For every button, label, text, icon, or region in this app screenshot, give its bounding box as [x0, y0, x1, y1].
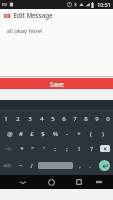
- staticText: @: [7, 130, 13, 138]
- button[interactable]: -: [61, 126, 73, 141]
- button[interactable]: .: [85, 156, 95, 175]
- button[interactable]: Enter: [95, 156, 113, 175]
- button[interactable]: ABC: [0, 156, 15, 175]
- button[interactable]: !: [73, 141, 85, 156]
- button[interactable]: @: [4, 126, 15, 141]
- button[interactable]: Switch keyboard: [93, 175, 105, 189]
- button[interactable]: :: [49, 141, 61, 156]
- button[interactable]: 6: [58, 111, 69, 126]
- staticText: .: [89, 162, 91, 170]
- staticText: 3: [28, 115, 32, 123]
- staticText: ): [102, 130, 104, 138]
- button[interactable]: %: [49, 126, 61, 141]
- staticText: (: [90, 130, 92, 138]
- staticText: #: [19, 130, 23, 138]
- staticText: !: [78, 145, 80, 153]
- staticText: -: [66, 130, 68, 138]
- button[interactable]: 7: [69, 111, 80, 126]
- staticText: 5: [51, 115, 55, 123]
- staticText: ;: [66, 145, 68, 153]
- staticText: 1: [4, 115, 8, 123]
- staticText: all okay here!: [6, 27, 43, 35]
- button[interactable]: *: [16, 141, 27, 156]
- staticText: Edit Message: [13, 11, 53, 19]
- staticText: Save: [50, 80, 64, 88]
- button[interactable]: Home: [37, 175, 65, 189]
- staticText: $: [41, 130, 45, 138]
- button[interactable]: Backspace: [97, 141, 113, 156]
- staticText: ,: [79, 162, 81, 170]
- staticText: 6: [62, 115, 66, 123]
- button[interactable]: ': [38, 141, 49, 156]
- button[interactable]: ;: [61, 141, 73, 156]
- button[interactable]: 0: [102, 111, 113, 126]
- button[interactable]: ": [27, 141, 38, 156]
- button[interactable]: Space: [38, 162, 73, 169]
- button[interactable]: ,: [75, 156, 85, 175]
- staticText: 4: [40, 115, 44, 123]
- staticText: 7: [73, 115, 77, 123]
- button[interactable]: Hide keyboard: [8, 175, 37, 189]
- button[interactable]: /: [26, 156, 36, 175]
- staticText: 2: [16, 115, 20, 123]
- button[interactable]: all okay here!: [0, 21, 113, 76]
- staticText: ': [43, 145, 45, 153]
- button[interactable]: ?: [85, 141, 97, 156]
- button[interactable]: $: [37, 126, 49, 141]
- staticText: 9: [95, 115, 99, 123]
- staticText: /: [30, 162, 33, 170]
- button[interactable]: 3: [24, 111, 36, 126]
- button[interactable]: #: [15, 126, 26, 141]
- staticText: +: [77, 130, 81, 138]
- staticText: 10:51: [97, 1, 111, 8]
- staticText: £: [30, 130, 34, 138]
- staticText: ?: [90, 145, 93, 153]
- button[interactable]: 4: [36, 111, 47, 126]
- staticText: 0: [106, 115, 110, 123]
- staticText: *: [20, 145, 24, 153]
- staticText: %: [53, 130, 58, 138]
- staticText: ABC: [3, 163, 12, 169]
- button[interactable]: 2: [12, 111, 24, 126]
- button[interactable]: 9: [91, 111, 102, 126]
- button[interactable]: =\<: [0, 141, 16, 156]
- staticText: =\<: [5, 146, 12, 152]
- button[interactable]: (: [85, 126, 97, 141]
- button[interactable]: App icon: [3, 12, 10, 19]
- staticText: :: [54, 145, 56, 153]
- button[interactable]: Recents: [65, 175, 93, 189]
- button[interactable]: £: [26, 126, 37, 141]
- button[interactable]: 1: [0, 111, 12, 126]
- button[interactable]: 5: [47, 111, 58, 126]
- button[interactable]: Settings: [15, 156, 26, 175]
- button[interactable]: +: [73, 126, 85, 141]
- staticText: ": [31, 145, 34, 153]
- button[interactable]: 8: [80, 111, 91, 126]
- button[interactable]: ): [97, 126, 109, 141]
- button[interactable]: Save: [0, 78, 113, 89]
- staticText: 8: [84, 115, 88, 123]
